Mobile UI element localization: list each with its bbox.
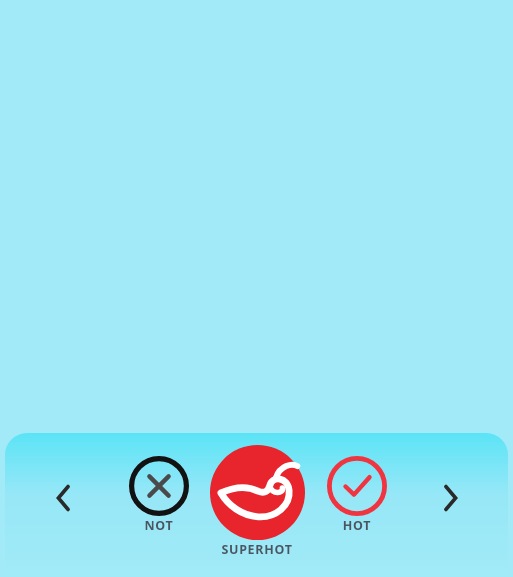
staticText: HOT <box>317 517 397 535</box>
staticText: SUPERHOT <box>197 541 317 559</box>
button[interactable]: HOT <box>317 455 397 547</box>
button[interactable]: Next <box>427 475 473 521</box>
button[interactable]: Previous <box>41 475 87 521</box>
button[interactable]: NOT <box>119 455 199 547</box>
staticText: NOT <box>119 517 199 535</box>
button[interactable]: SUPERHOT <box>197 443 317 571</box>
